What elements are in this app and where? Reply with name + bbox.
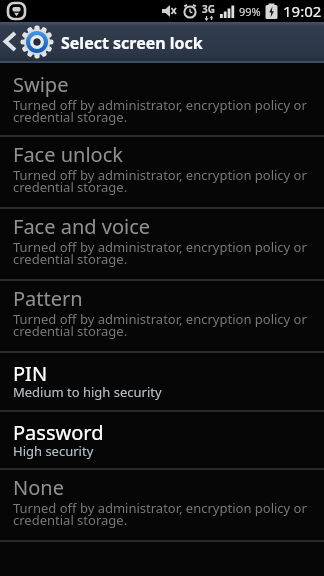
staticText: None xyxy=(13,474,64,501)
staticText: Turned off by administrator, encryption … xyxy=(13,238,307,256)
staticText: credential storage. xyxy=(13,178,128,196)
staticText: 99% xyxy=(239,4,261,19)
staticText: Select screen lock xyxy=(61,32,203,54)
staticText: Turned off by administrator, encryption … xyxy=(13,499,307,517)
staticText: Medium to high security xyxy=(13,383,162,401)
staticText: Turned off by administrator, encryption … xyxy=(13,96,307,114)
staticText: High security xyxy=(13,442,94,460)
staticText: credential storage. xyxy=(13,511,128,529)
staticText: Swipe xyxy=(13,71,69,98)
staticText: credential storage. xyxy=(13,322,128,340)
button[interactable]: Swipe xyxy=(0,63,324,135)
button[interactable]: Pattern xyxy=(0,281,324,351)
button[interactable]: None xyxy=(0,470,324,540)
button[interactable]: Face and voice xyxy=(0,209,324,279)
button[interactable]: Select screen lock xyxy=(0,22,324,63)
staticText: 19:02 xyxy=(283,1,322,21)
staticText: PIN xyxy=(13,360,48,387)
staticText: Password xyxy=(13,419,104,446)
staticText: Turned off by administrator, encryption … xyxy=(13,310,307,328)
staticText: Turned off by administrator, encryption … xyxy=(13,166,307,184)
staticText: 3G xyxy=(202,2,215,16)
button[interactable]: Face unlock xyxy=(0,137,324,207)
staticText: Face and voice xyxy=(13,213,151,240)
button[interactable]: Password xyxy=(0,412,324,468)
button[interactable]: PIN xyxy=(0,353,324,410)
staticText: credential storage. xyxy=(13,108,128,126)
staticText: credential storage. xyxy=(13,250,128,268)
staticText: Pattern xyxy=(13,285,83,312)
staticText: Face unlock xyxy=(13,141,123,168)
